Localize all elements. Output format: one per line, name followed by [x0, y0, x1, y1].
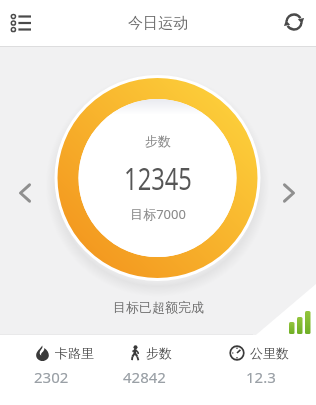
staticText: 公里数: [250, 345, 289, 361]
button[interactable]: [275, 4, 313, 42]
staticText: 今日运动: [128, 14, 188, 33]
staticText: 42842: [123, 367, 166, 387]
staticText: 卡路里: [55, 345, 94, 361]
button[interactable]: 公里数: [211, 335, 316, 405]
button[interactable]: [8, 176, 42, 210]
staticText: 步数: [145, 133, 171, 149]
staticText: 步数: [146, 345, 172, 361]
staticText: 目标已超额完成: [113, 299, 204, 315]
staticText: 12.3: [246, 367, 276, 387]
button[interactable]: 卡路里: [0, 335, 106, 405]
staticText: 2302: [34, 367, 69, 387]
button[interactable]: [272, 176, 306, 210]
staticText: 12345: [124, 158, 192, 199]
button[interactable]: 步数: [106, 335, 211, 405]
button[interactable]: [2, 4, 40, 42]
staticText: 目标7000: [130, 205, 186, 223]
